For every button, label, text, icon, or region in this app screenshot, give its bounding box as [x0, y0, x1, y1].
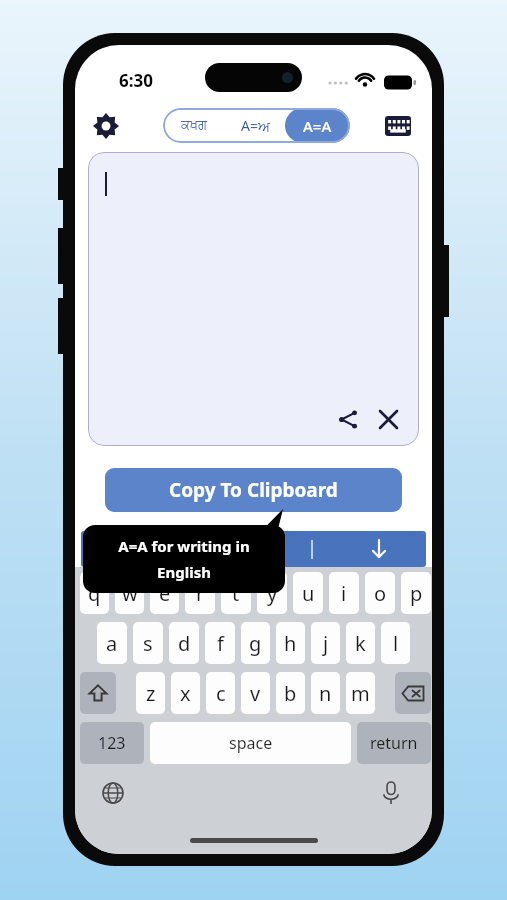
button[interactable]: b: [276, 672, 305, 714]
button[interactable]: Keyboard: [380, 108, 416, 144]
button[interactable]: p: [401, 572, 431, 614]
staticText: return: [370, 732, 418, 754]
button[interactable]: j: [311, 622, 340, 664]
button[interactable]: k: [346, 622, 375, 664]
button[interactable]: A=ਅ: [225, 108, 285, 143]
button[interactable]: s: [133, 622, 163, 664]
button[interactable]: i: [329, 572, 359, 614]
button[interactable]: space: [150, 722, 351, 764]
button[interactable]: h: [276, 622, 305, 664]
button[interactable]: A=A: [285, 108, 350, 143]
button[interactable]: n: [311, 672, 340, 714]
staticText: k: [355, 630, 366, 657]
button[interactable]: Change language: [97, 777, 129, 809]
staticText: g: [249, 630, 262, 657]
staticText: w: [122, 580, 138, 607]
button[interactable]: a: [97, 622, 127, 664]
staticText: x: [180, 680, 191, 707]
staticText: p: [410, 580, 423, 607]
button[interactable]: Dictate: [375, 777, 407, 809]
button[interactable]: Copy To Clipboard: [105, 468, 402, 512]
staticText: t: [232, 580, 240, 607]
staticText: u: [302, 580, 315, 607]
button[interactable]: A=A for writing in English: [83, 525, 285, 593]
staticText: v: [250, 680, 261, 707]
staticText: A=ਅ: [241, 116, 270, 135]
button[interactable]: x: [171, 672, 200, 714]
button[interactable]: v: [241, 672, 270, 714]
staticText: ਕਖਗ: [181, 119, 208, 132]
staticText: r: [196, 580, 205, 607]
staticText: 123: [98, 732, 126, 754]
button[interactable]: Hide keyboard: [368, 538, 390, 560]
button[interactable]: y: [257, 572, 287, 614]
button[interactable]: o: [365, 572, 395, 614]
staticText: n: [319, 680, 332, 707]
staticText: h: [284, 630, 297, 657]
button[interactable]: Share: [88, 152, 419, 446]
staticText: y: [267, 580, 278, 607]
button[interactable]: t: [221, 572, 251, 614]
button[interactable]: g: [241, 622, 270, 664]
button[interactable]: w: [115, 572, 144, 614]
button[interactable]: 123: [80, 722, 144, 764]
button[interactable]: l: [381, 622, 410, 664]
staticText: e: [159, 580, 171, 607]
button[interactable]: q: [80, 572, 109, 614]
staticText: l: [393, 630, 399, 657]
staticText: A=A for writing in English: [101, 536, 267, 583]
button[interactable]: Share: [331, 402, 365, 436]
staticText: q: [88, 580, 101, 607]
button[interactable]: r: [185, 572, 215, 614]
button[interactable]: d: [169, 622, 199, 664]
button[interactable]: e: [150, 572, 179, 614]
button[interactable]: Backspace: [395, 672, 431, 714]
staticText: m: [351, 680, 370, 707]
button[interactable]: ਕਖਗ: [163, 108, 225, 143]
staticText: space: [229, 732, 273, 754]
button[interactable]: Clear: [371, 402, 405, 436]
staticText: a: [106, 630, 118, 657]
button[interactable]: f: [205, 622, 235, 664]
button[interactable]: Shift: [80, 672, 116, 714]
staticText: z: [146, 680, 156, 707]
button[interactable]: z: [136, 672, 165, 714]
staticText: b: [284, 680, 297, 707]
button[interactable]: c: [206, 672, 235, 714]
staticText: i: [341, 580, 347, 607]
button[interactable]: u: [293, 572, 323, 614]
staticText: 6:30: [119, 69, 153, 92]
staticText: f: [217, 630, 224, 657]
button[interactable]: m: [346, 672, 375, 714]
staticText: j: [323, 630, 329, 657]
staticText: o: [374, 580, 387, 607]
staticText: A=A: [303, 116, 332, 136]
staticText: d: [178, 630, 191, 657]
staticText: s: [143, 630, 153, 657]
staticText: Copy To Clipboard: [169, 477, 338, 503]
button[interactable]: return: [357, 722, 431, 764]
staticText: c: [216, 680, 226, 707]
button[interactable]: Settings: [87, 107, 125, 145]
